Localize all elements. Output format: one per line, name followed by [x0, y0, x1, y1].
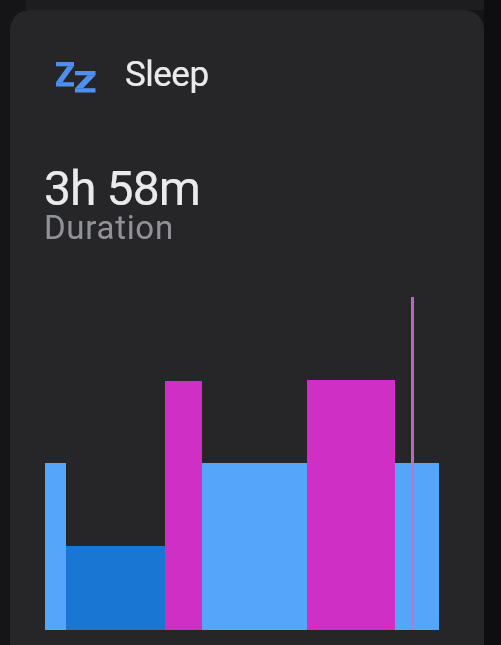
staticText: Duration: [44, 208, 174, 247]
button[interactable]: [10, 10, 484, 645]
staticText: 3h 58m: [44, 160, 200, 216]
staticText: Sleep: [125, 54, 209, 95]
